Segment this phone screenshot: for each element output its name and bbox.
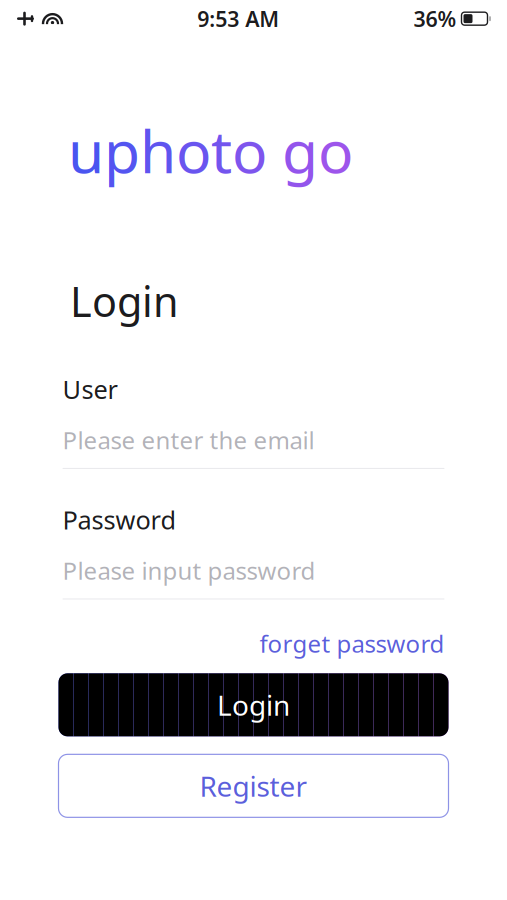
staticText: p	[104, 112, 140, 190]
staticText: 36%	[413, 4, 456, 33]
staticText: o	[318, 112, 353, 190]
staticText: Please input password	[62, 555, 315, 586]
staticText: Login	[70, 274, 179, 328]
staticText: forget password	[259, 627, 444, 659]
staticText: Password	[62, 503, 176, 537]
staticText: User	[62, 372, 117, 406]
staticText: 9:53 AM	[197, 4, 279, 33]
button[interactable]: Login	[58, 673, 448, 736]
staticText: g	[282, 112, 318, 190]
staticText: Please enter the email	[62, 424, 314, 456]
staticText: o	[176, 112, 211, 190]
staticText: h	[140, 112, 176, 190]
staticText: Login	[217, 686, 290, 723]
button[interactable]: Register	[58, 754, 448, 817]
staticText: Register	[199, 767, 307, 804]
button[interactable]: forget password	[259, 621, 444, 665]
staticText: o	[232, 112, 267, 190]
staticText: u	[68, 112, 104, 190]
staticText: t	[211, 112, 232, 190]
